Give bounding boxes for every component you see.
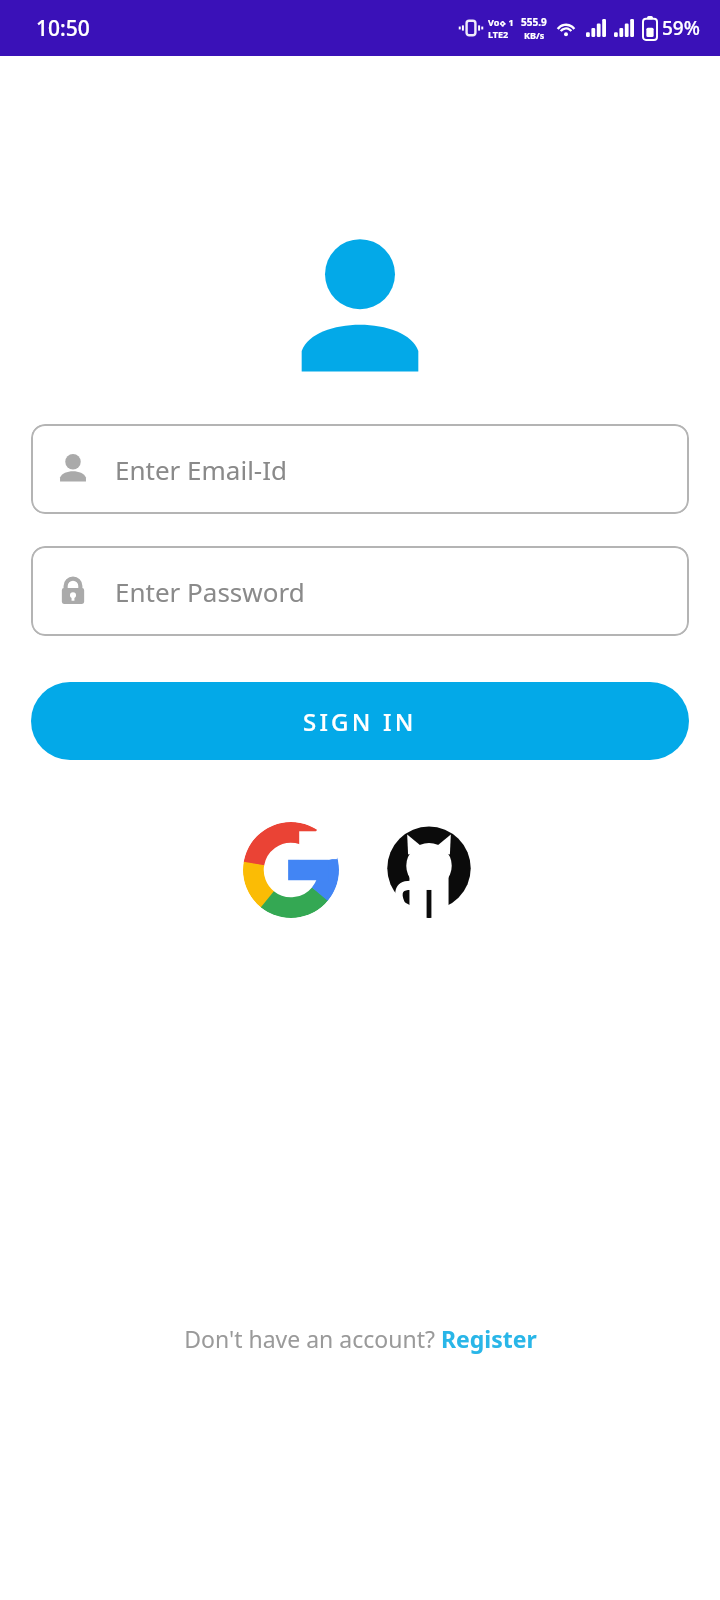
staticText: 10:50 — [36, 14, 90, 43]
staticText: Vo⟡ 1 — [488, 16, 514, 28]
staticText: Enter Password — [115, 574, 305, 609]
staticText: LTE2 — [488, 28, 509, 40]
staticText: 59% — [662, 15, 700, 41]
staticText: SIGN IN — [303, 705, 417, 738]
button[interactable]: Enter Password — [31, 546, 689, 636]
staticText: Don't have an account? Register — [184, 1323, 537, 1354]
button[interactable]: Enter Email-Id — [31, 424, 689, 514]
button[interactable]: Don't have an account? Register — [178, 1319, 543, 1358]
staticText: KB/s — [524, 29, 545, 41]
button[interactable]: Sign in with Google — [243, 822, 339, 918]
button[interactable]: Sign in with GitHub — [381, 822, 477, 918]
staticText: 555.9 — [521, 15, 547, 29]
button[interactable]: SIGN IN — [31, 682, 689, 760]
staticText: Enter Email-Id — [115, 452, 288, 487]
